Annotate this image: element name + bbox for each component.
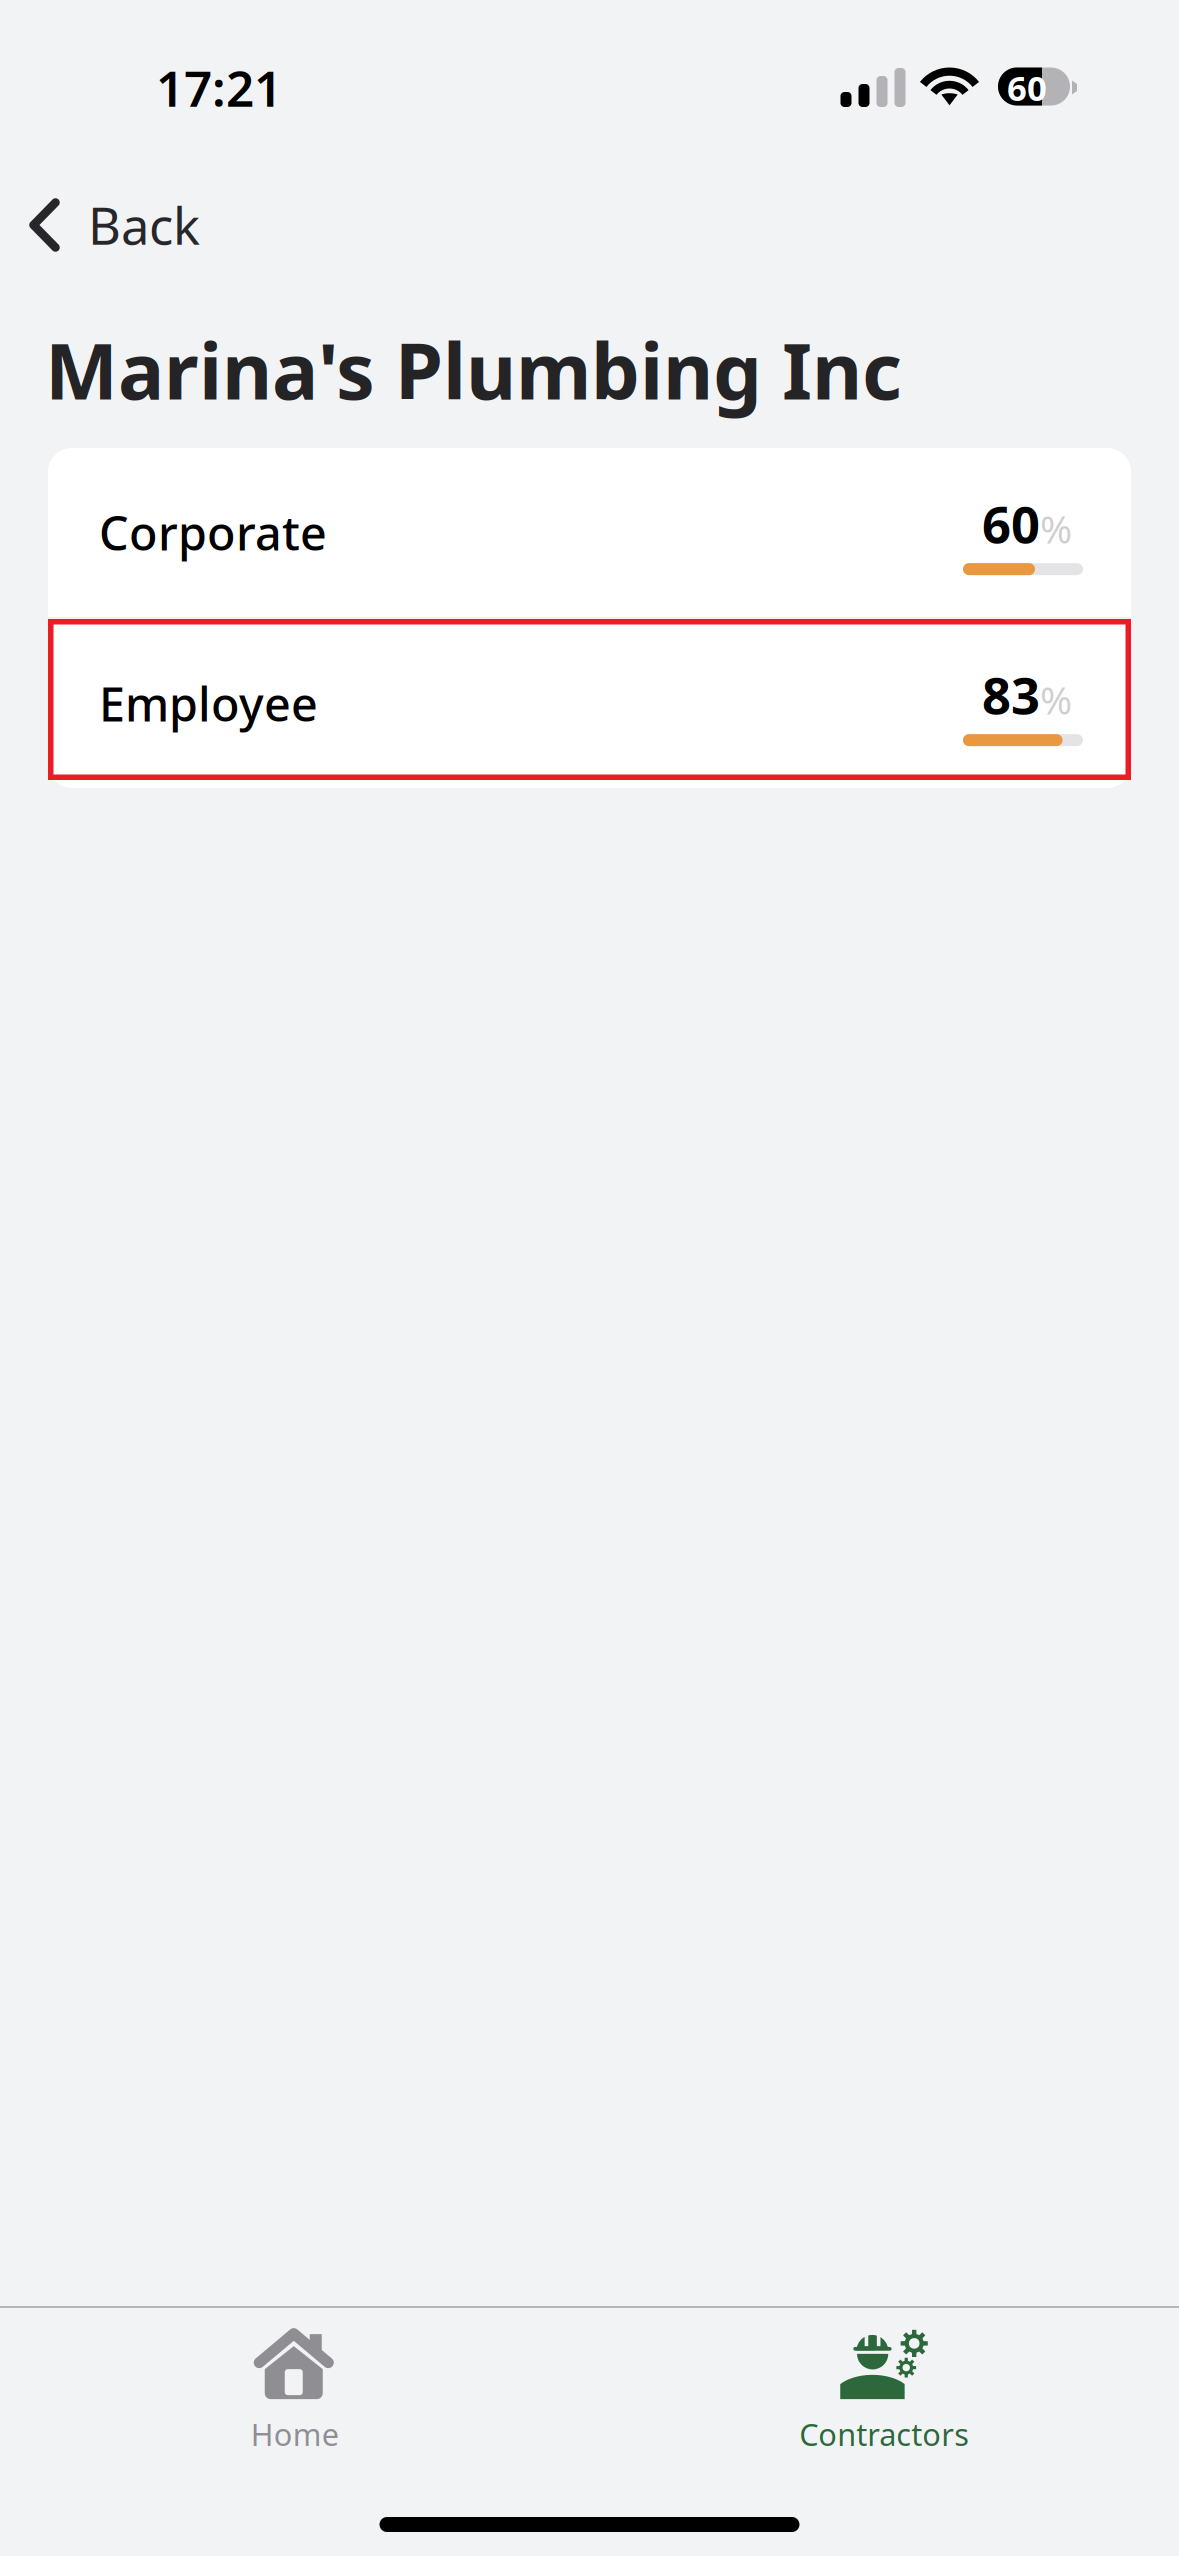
staticText: % — [1040, 674, 1072, 725]
staticText: Home — [251, 2414, 339, 2454]
button[interactable]: Contractors — [589, 2298, 1179, 2466]
button[interactable]: Home — [0, 2298, 589, 2466]
staticText: Contractors — [799, 2414, 969, 2454]
staticText: Corporate — [99, 501, 327, 563]
button[interactable]: Back — [0, 175, 224, 275]
staticText: % — [1040, 503, 1072, 554]
staticText: 83 — [982, 661, 1040, 728]
staticText: Back — [88, 191, 200, 259]
staticText: 17:21 — [156, 55, 282, 120]
staticText: Marina's Plumbing Inc — [45, 318, 902, 421]
button[interactable]: Employee — [48, 619, 1131, 788]
button[interactable]: Corporate — [48, 448, 1131, 617]
staticText: 60 — [982, 490, 1040, 557]
staticText: 60 — [1007, 64, 1047, 110]
staticText: Employee — [99, 672, 318, 734]
